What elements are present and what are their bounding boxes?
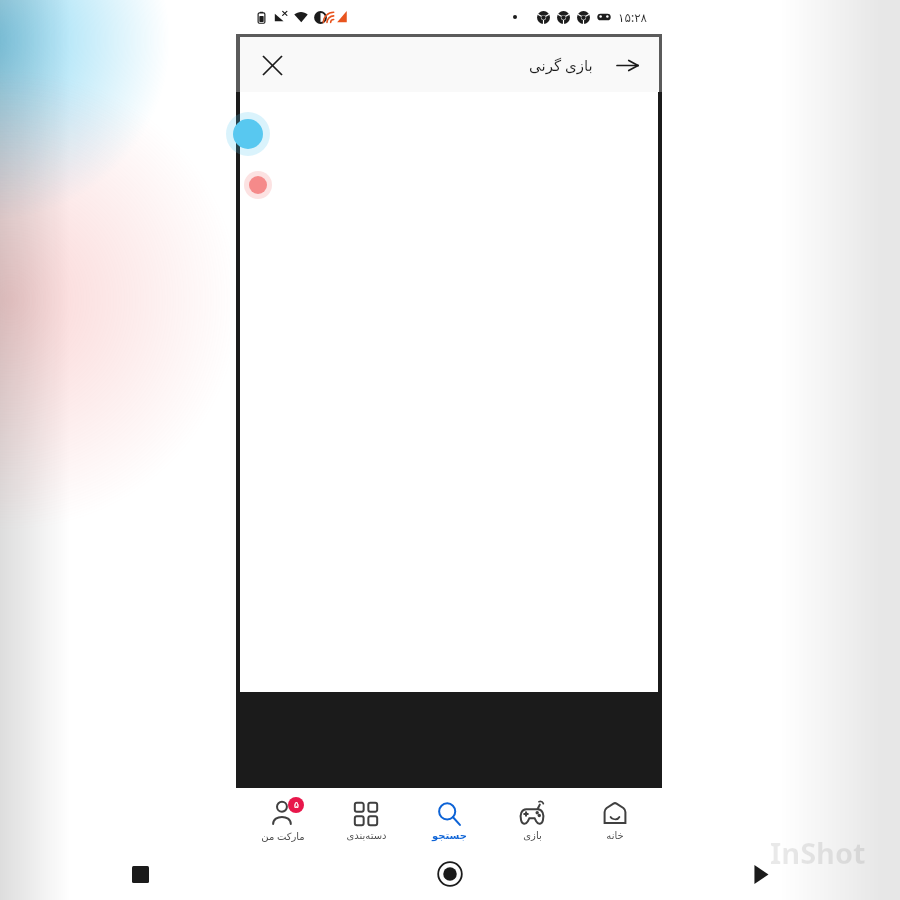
button[interactable]: Home — [428, 852, 472, 896]
staticText: مارکت من — [261, 829, 305, 843]
staticText: بازی — [523, 830, 542, 842]
staticText: ۱۵:۲۸ — [618, 9, 648, 25]
staticText: ۵ — [294, 800, 299, 810]
button[interactable]: دسته‌بندی — [330, 795, 402, 846]
button[interactable]: Back — [740, 854, 780, 894]
button[interactable]: بازی — [496, 795, 568, 846]
staticText: خانه — [606, 830, 624, 842]
button[interactable]: Forward — [609, 47, 645, 83]
button[interactable]: ۵ — [247, 794, 319, 847]
button[interactable]: Close — [252, 45, 292, 85]
staticText: جستجو — [432, 830, 467, 842]
staticText: بازی گرنی — [529, 55, 593, 75]
button[interactable]: خانه — [579, 795, 651, 846]
button[interactable]: Recents — [120, 854, 160, 894]
staticText: InShot — [770, 833, 866, 872]
button[interactable]: جستجو — [413, 795, 485, 846]
staticText: دسته‌بندی — [346, 830, 387, 842]
